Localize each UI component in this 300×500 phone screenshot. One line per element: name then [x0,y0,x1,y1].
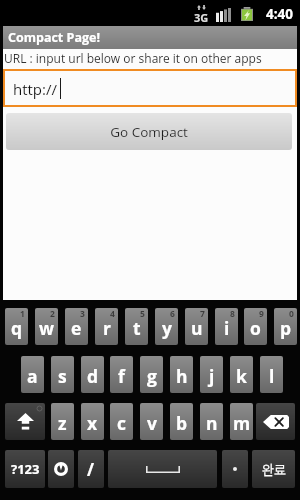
staticText: / [87,458,95,481]
staticText: y [162,316,172,340]
button[interactable]: Go Compact [6,113,292,150]
button[interactable]: v [140,403,163,440]
staticText: d [87,364,99,388]
button[interactable]: r [95,308,118,345]
staticText: t [133,316,141,340]
staticText: URL : input url below or share it on oth… [4,50,262,66]
button[interactable]: Space [108,450,217,488]
staticText: 완료 [262,460,286,479]
staticText: 4:40 [266,5,293,23]
button[interactable]: e [65,308,88,345]
staticText: l [269,364,275,388]
button[interactable]: / [78,450,104,488]
staticText: h [176,364,188,388]
staticText: b [176,411,188,435]
staticText: 0 [289,308,294,320]
button[interactable]: Change keyboard [48,450,74,488]
staticText: r [103,316,111,340]
staticText: 7 [200,308,205,320]
button[interactable]: ?123 [5,450,45,488]
button[interactable]: 완료 [252,450,295,488]
button[interactable]: z [51,403,74,440]
staticText: Compact Page! [8,29,100,46]
button[interactable]: k [230,356,253,393]
staticText: u [191,316,203,340]
button[interactable]: a [21,356,44,393]
staticText: 1 [20,308,25,320]
button[interactable]: y [155,308,178,345]
button[interactable]: w [35,308,58,345]
button[interactable]: Period [222,450,248,488]
staticText: 6 [170,308,175,320]
staticText: p [280,316,292,340]
button[interactable]: u [185,308,208,345]
staticText: 5 [140,308,145,320]
staticText: c [117,411,126,435]
staticText: 3 [80,308,85,320]
button[interactable]: q [5,308,28,345]
button[interactable]: i [215,308,238,345]
button[interactable]: m [230,403,253,440]
button[interactable]: x [81,403,104,440]
button[interactable]: s [51,356,74,393]
staticText: q [11,316,23,340]
button[interactable]: o [244,308,267,345]
staticText: e [71,316,82,340]
button[interactable]: d [81,356,104,393]
staticText: 3G [194,10,209,25]
staticText: j [209,364,215,388]
button[interactable]: t [125,308,148,345]
staticText: 2 [50,308,55,320]
staticText: i [224,316,230,340]
staticText: v [147,411,157,435]
staticText: x [87,411,98,435]
staticText: o [250,316,261,340]
staticText: n [206,411,218,435]
staticText: Go Compact [110,123,188,141]
button[interactable]: h [170,356,193,393]
button[interactable]: c [110,403,133,440]
staticText: f [118,364,125,388]
button[interactable]: j [200,356,223,393]
staticText: 9 [259,308,264,320]
button[interactable]: b [170,403,193,440]
button[interactable]: Shift [5,403,45,440]
staticText: http:// [13,79,57,99]
staticText: 8 [230,308,235,320]
button[interactable]: f [110,356,133,393]
staticText: z [58,411,67,435]
button[interactable]: l [260,356,283,393]
staticText: k [236,364,247,388]
button[interactable]: g [140,356,163,393]
staticText: 4 [110,308,115,320]
staticText: a [27,364,38,388]
button[interactable]: p [274,308,297,345]
staticText: w [39,316,54,340]
button[interactable]: n [200,403,223,440]
staticText: s [58,364,67,388]
staticText: m [233,411,251,435]
staticText: g [147,364,157,388]
button[interactable]: Backspace [256,403,295,440]
staticText: ?123 [11,460,40,478]
button[interactable]: http:// [5,71,295,105]
